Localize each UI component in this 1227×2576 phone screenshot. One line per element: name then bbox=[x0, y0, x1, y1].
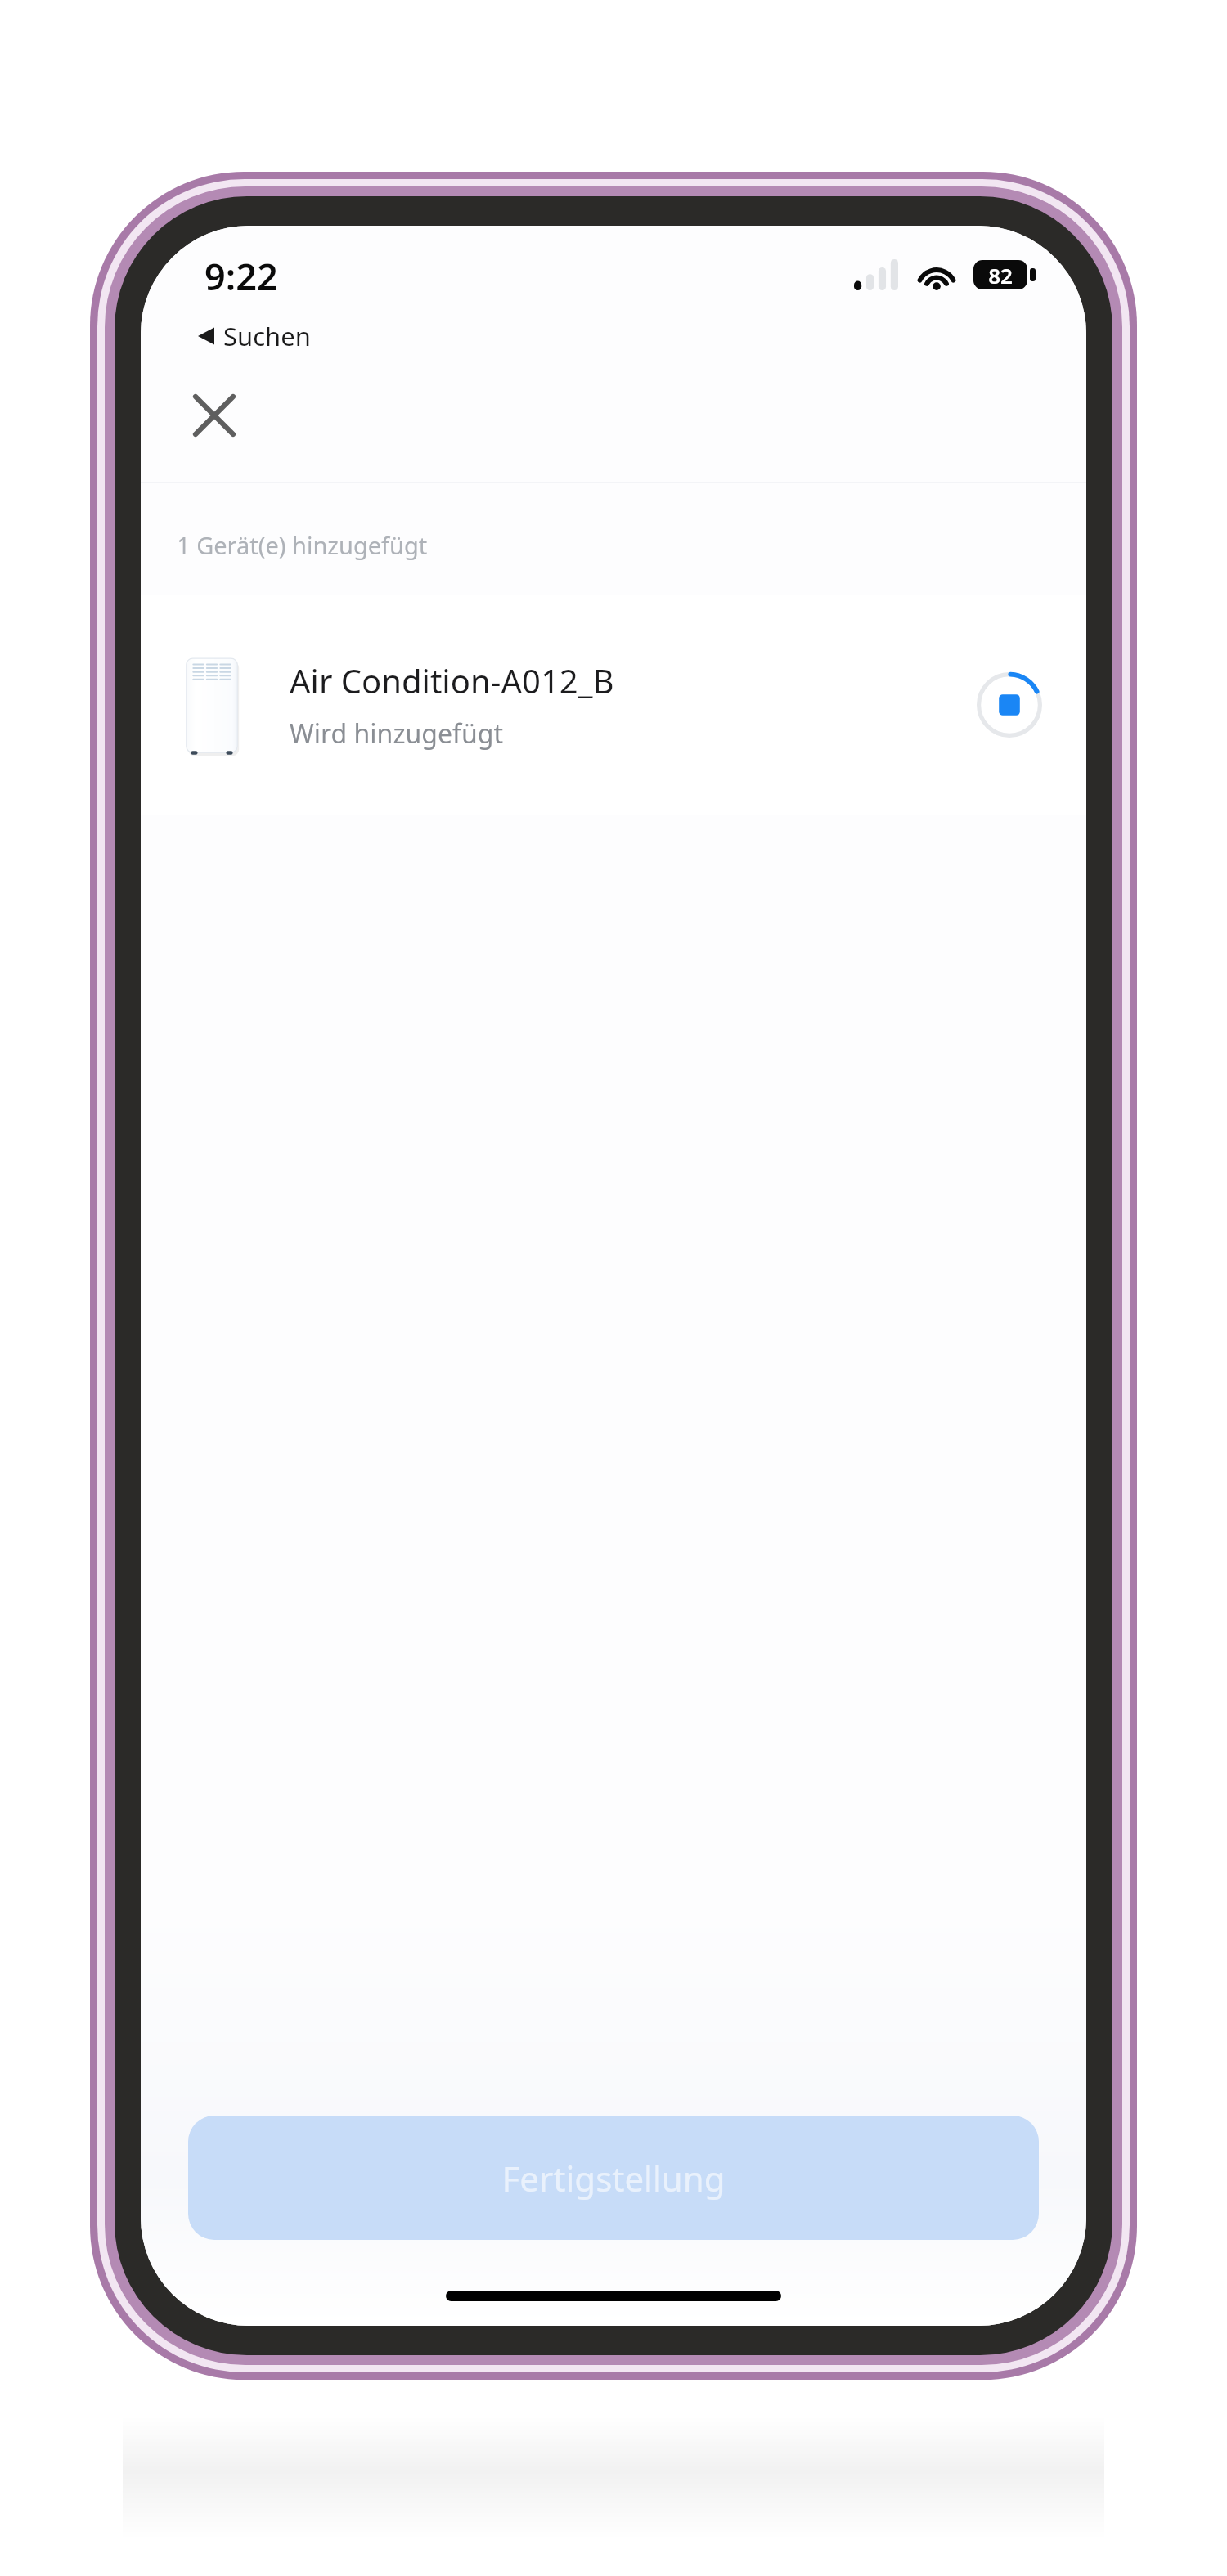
staticText: Wird hinzugefügt bbox=[290, 716, 503, 752]
staticText: 82 bbox=[988, 261, 1013, 289]
button[interactable]: Fertigstellung bbox=[188, 2116, 1039, 2240]
button[interactable]: Schließen bbox=[180, 381, 249, 450]
staticText: 9:22 bbox=[204, 251, 278, 301]
staticText: Fertigstellung bbox=[501, 2155, 726, 2201]
staticText: Suchen bbox=[223, 319, 311, 353]
staticText: Air Condition-A012_B bbox=[290, 658, 614, 702]
button[interactable]: Air Condition-A012_B bbox=[141, 595, 1086, 815]
button[interactable]: Suchen bbox=[193, 314, 316, 358]
button[interactable]: Hinzufügen abbrechen bbox=[972, 667, 1047, 743]
staticText: 1 Gerät(e) hinzugefügt bbox=[177, 529, 428, 561]
